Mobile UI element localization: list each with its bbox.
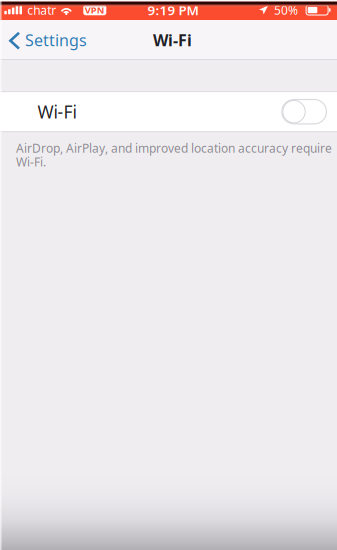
- staticText: Settings: [25, 29, 87, 51]
- staticText: 9:19 PM: [147, 1, 198, 19]
- staticText: VPN: [85, 4, 105, 16]
- button[interactable]: Settings: [0, 20, 96, 60]
- staticText: Wi-Fi: [153, 29, 192, 51]
- button[interactable]: Wi-Fi: [0, 92, 337, 131]
- staticText: 50%: [274, 2, 298, 18]
- staticText: chatr: [27, 2, 56, 18]
- staticText: Wi-Fi: [37, 100, 76, 123]
- staticText: AirDrop, AirPlay, and improved location …: [16, 140, 332, 170]
